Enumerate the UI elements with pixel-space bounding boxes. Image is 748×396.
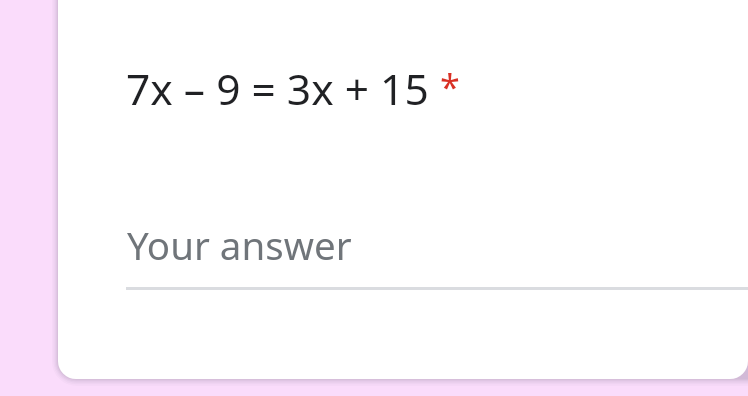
staticText: * — [440, 62, 460, 111]
button[interactable]: 7x – 9 = 3x + 15 — [58, 0, 748, 379]
staticText: Your answer — [127, 219, 352, 271]
staticText: 7x – 9 = 3x + 15 — [126, 60, 429, 118]
button[interactable]: Your answer — [126, 219, 748, 290]
